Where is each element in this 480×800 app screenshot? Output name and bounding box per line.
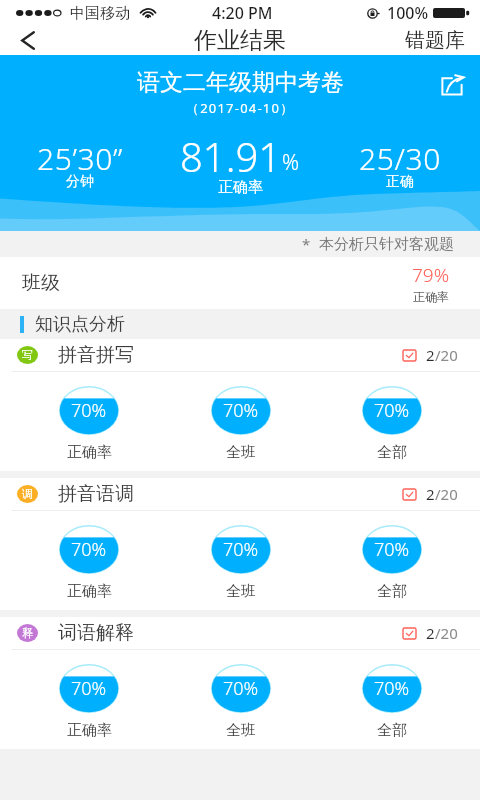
staticText: /20 — [435, 345, 458, 365]
staticText: 本分析只针对客观题 — [319, 235, 454, 254]
staticText: 81.91 — [180, 129, 282, 183]
staticText: 班级 — [22, 271, 60, 295]
staticText: 2 — [426, 623, 435, 643]
staticText: * — [302, 234, 311, 254]
staticText: 70% — [374, 398, 410, 423]
staticText: 词语解释 — [58, 621, 134, 645]
button[interactable]: Back — [0, 26, 52, 55]
staticText: 70% — [374, 537, 410, 562]
staticText: 正确率 — [218, 178, 263, 197]
staticText: /20 — [435, 623, 458, 643]
staticText: 正确率 — [67, 443, 112, 462]
staticText: 70% — [223, 398, 259, 423]
staticText: 70% — [223, 537, 259, 562]
staticText: 正确率 — [67, 582, 112, 601]
staticText: /20 — [435, 484, 458, 504]
staticText: 释 — [22, 626, 33, 640]
staticText: 70% — [223, 676, 259, 701]
staticText: 70% — [71, 537, 107, 562]
button[interactable]: 写 — [0, 339, 480, 371]
staticText: 全部 — [377, 721, 407, 740]
staticText: 70% — [374, 676, 410, 701]
staticText: % — [282, 148, 300, 177]
staticText: 调 — [22, 487, 33, 501]
staticText: 中国移动 — [70, 4, 130, 23]
staticText: 知识点分析 — [35, 313, 125, 336]
button[interactable]: 调 — [0, 478, 480, 510]
staticText: 4:20 PM — [212, 2, 273, 24]
staticText: 25’30” — [37, 138, 124, 179]
staticText: 错题库 — [405, 28, 465, 53]
staticText: 全部 — [377, 582, 407, 601]
staticText: 2 — [426, 345, 435, 365]
staticText: 70% — [71, 676, 107, 701]
staticText: 写 — [22, 348, 33, 362]
staticText: 2 — [426, 484, 435, 504]
staticText: 正确率 — [413, 289, 449, 304]
staticText: 正确 — [386, 173, 414, 191]
staticText: 分钟 — [66, 173, 94, 191]
staticText: 25/30 — [359, 138, 441, 179]
staticText: 拼音语调 — [58, 482, 134, 506]
staticText: 作业结果 — [194, 26, 286, 55]
staticText: 正确率 — [67, 721, 112, 740]
staticText: （2017-04-10） — [186, 99, 295, 117]
staticText: 79% — [412, 262, 450, 288]
staticText: 全班 — [226, 443, 256, 462]
button[interactable]: 错题库 — [395, 26, 480, 55]
staticText: 全班 — [226, 582, 256, 601]
staticText: 全班 — [226, 721, 256, 740]
staticText: 拼音拼写 — [58, 343, 134, 367]
staticText: 100% — [387, 2, 429, 24]
staticText: 语文二年级期中考卷 — [137, 68, 344, 97]
button[interactable]: 班级 — [0, 257, 480, 309]
staticText: 全部 — [377, 443, 407, 462]
staticText: 70% — [71, 398, 107, 423]
button[interactable]: Share — [434, 69, 470, 101]
button[interactable]: 释 — [0, 617, 480, 649]
